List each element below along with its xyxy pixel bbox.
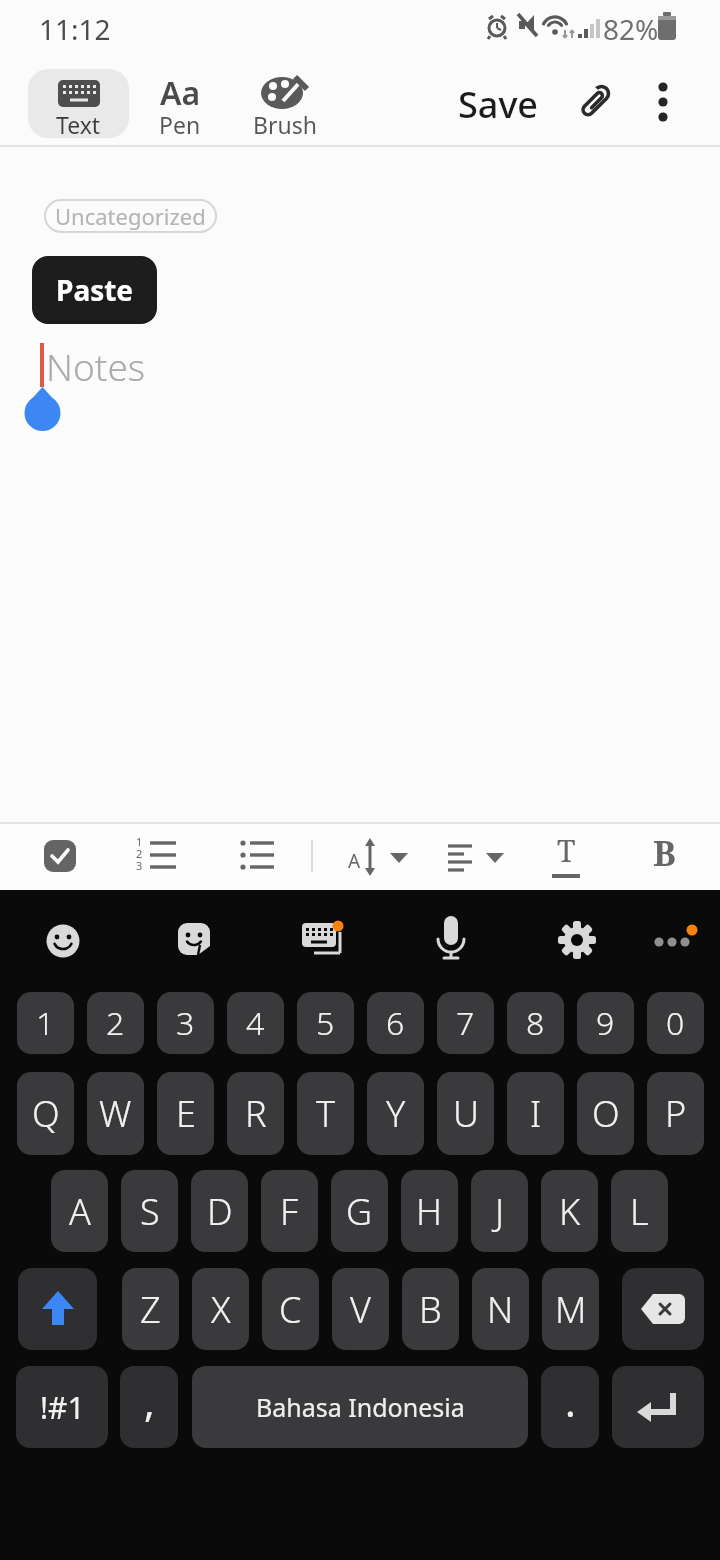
button[interactable]: Paste [32,256,157,324]
staticText: U [453,1089,479,1138]
staticText: Aa [160,71,201,107]
staticText: Notes [46,341,146,387]
button[interactable] [558,921,596,959]
staticText: Pen [159,109,201,135]
button[interactable]: I [507,1072,564,1155]
staticText: , [144,1374,155,1428]
button[interactable]: Y [367,1072,424,1155]
button[interactable]: Uncategorized [44,199,217,233]
button[interactable] [302,920,346,960]
button[interactable] [436,916,466,962]
button[interactable]: A [344,836,414,878]
staticText: 1 [36,1001,55,1045]
staticText: Y [386,1089,406,1138]
staticText: 8 [526,1001,545,1045]
button[interactable]: J [471,1170,528,1252]
button[interactable] [572,81,614,123]
button[interactable]: Q [17,1072,74,1155]
button[interactable]: M [542,1268,599,1350]
button[interactable]: R [227,1072,284,1155]
button[interactable] [236,834,280,880]
button[interactable]: 7 [437,992,494,1054]
button[interactable]: B [640,830,688,882]
button[interactable]: Z [122,1268,179,1350]
staticText: S [140,1187,160,1236]
button[interactable]: , [120,1366,178,1448]
button[interactable] [612,1366,704,1448]
button[interactable]: 4 [227,992,284,1054]
staticText: 3 [176,1001,195,1045]
button[interactable]: C [262,1268,319,1350]
button[interactable]: U [437,1072,494,1155]
button[interactable]: . [541,1366,599,1448]
button[interactable]: !#1 [16,1366,108,1448]
staticText: M [555,1285,587,1334]
staticText: Q [32,1089,60,1138]
staticText: 1 [136,834,143,849]
button[interactable]: K [541,1170,598,1252]
button[interactable]: Brush [240,69,330,138]
staticText: 3 [136,858,143,873]
button[interactable]: 1 [17,992,74,1054]
staticText: Paste [56,271,134,309]
staticText: T [557,830,576,870]
staticText: A [69,1187,91,1236]
staticText: Z [140,1285,161,1334]
staticText: A [348,848,361,874]
button[interactable]: Text [28,69,129,138]
button[interactable]: 5 [297,992,354,1054]
staticText: Brush [253,109,317,135]
staticText: O [592,1089,620,1138]
staticText: Uncategorized [55,201,206,231]
button[interactable] [622,1268,704,1350]
button[interactable]: X [192,1268,249,1350]
staticText: 82% [603,10,659,44]
staticText: 2 [106,1001,125,1045]
button[interactable]: Aa [140,69,220,138]
button[interactable] [650,80,676,124]
button[interactable]: O [577,1072,634,1155]
button[interactable]: L [611,1170,668,1252]
button[interactable]: S [121,1170,178,1252]
staticText: H [416,1187,443,1236]
button[interactable]: 1 [130,834,182,880]
button[interactable]: V [332,1268,389,1350]
button[interactable]: T [544,830,588,882]
staticText: Text [56,109,101,135]
button[interactable]: 9 [577,992,634,1054]
staticText: V [350,1285,371,1334]
button[interactable] [650,920,700,956]
staticText: 0 [666,1001,685,1045]
staticText: B [653,830,676,876]
button[interactable]: 8 [507,992,564,1054]
button[interactable]: B [402,1268,459,1350]
staticText: Save [458,80,539,124]
button[interactable]: H [401,1170,458,1252]
button[interactable]: N [472,1268,529,1350]
staticText: 2 [136,846,143,861]
staticText: E [176,1089,196,1138]
button[interactable]: A [51,1170,108,1252]
button[interactable]: F [261,1170,318,1252]
button[interactable]: D [191,1170,248,1252]
button[interactable]: 2 [87,992,144,1054]
button[interactable]: T [297,1072,354,1155]
button[interactable]: 3 [157,992,214,1054]
button[interactable]: G [331,1170,388,1252]
staticText: I [530,1089,542,1138]
button[interactable] [444,836,508,878]
button[interactable]: 6 [367,992,424,1054]
button[interactable]: Bahasa Indonesia [192,1366,528,1448]
button[interactable] [18,1268,97,1350]
staticText: F [280,1187,299,1236]
button[interactable] [46,924,80,958]
button[interactable]: W [87,1072,144,1155]
button[interactable]: 0 [647,992,704,1054]
button[interactable] [44,840,76,872]
button[interactable] [178,923,210,955]
staticText: D [207,1187,233,1236]
staticText: 5 [316,1001,335,1045]
staticText: B [419,1285,442,1334]
button[interactable]: P [647,1072,704,1155]
button[interactable]: E [157,1072,214,1155]
